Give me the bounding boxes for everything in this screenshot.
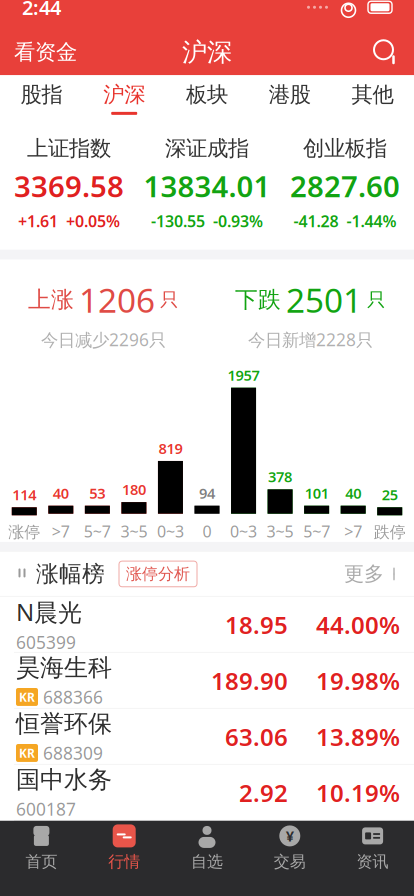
staticText: 5~7 [84,521,111,542]
staticText: 189.90 [211,665,288,697]
staticText: 1206 [79,278,155,322]
button[interactable]: 创业板指 [276,127,414,240]
staticText: 605399 [16,631,76,654]
staticText: 其他 [352,82,394,108]
staticText: 3~5 [267,521,294,542]
staticText: 1957 [227,365,259,385]
button[interactable]: 行情 [83,823,166,873]
staticText: 688366 [43,685,103,708]
staticText: 819 [158,438,182,458]
staticText: 18.95 [225,609,288,641]
staticText: >7 [344,521,362,542]
button[interactable]: 资讯 [331,823,414,873]
staticText: +0.05% [66,210,120,232]
staticText: 10.19% [316,777,400,809]
staticText: 涨停 [8,522,40,542]
button[interactable]: 板块 [166,75,248,121]
staticText: 上涨 [28,286,74,314]
staticText: -130.55 [151,210,205,232]
staticText: 13834.01 [143,166,270,205]
staticText: 5~7 [303,521,330,542]
button[interactable]: 昊海生科 [0,653,414,709]
staticText: 180 [122,480,146,499]
button[interactable]: 更多 [344,562,414,586]
button[interactable]: 涨停分析 [119,561,197,587]
staticText: 688309 [43,741,103,764]
staticText: 国中水务 [16,765,112,794]
button[interactable]: 其他 [331,75,414,121]
staticText: >7 [52,521,70,542]
staticText: N晨光 [16,596,82,628]
staticText: 昊海生科 [16,653,112,682]
staticText: 自选 [191,852,223,872]
staticText: 40 [53,483,69,503]
button[interactable]: 上证指数 [0,127,138,240]
staticText: 600187 [16,797,76,820]
button[interactable]: 港股 [248,75,331,121]
staticText: 3369.58 [14,166,124,205]
staticText: 行情 [108,852,140,872]
staticText: 只 [367,288,386,311]
staticText: 资讯 [357,852,389,872]
staticText: 44.00% [316,609,400,641]
staticText: 今日新增2228只 [248,328,373,351]
staticText: 深证成指 [165,135,249,161]
staticText: 94 [199,483,215,503]
staticText: ¥ [286,826,294,846]
button[interactable]: 恒誉环保 [0,709,414,765]
button[interactable]: N晨光 [0,597,414,653]
staticText: KR [19,745,35,761]
button[interactable]: 股指 [0,75,83,121]
staticText: 恒誉环保 [16,709,112,738]
staticText: 只 [160,288,179,311]
staticText: 25 [382,485,398,504]
staticText: 创业板指 [303,135,387,161]
staticText: 13.89% [316,721,400,753]
staticText: 交易 [274,852,306,872]
button[interactable]: 看资金 [0,29,91,75]
staticText: 19.98% [316,665,400,697]
staticText: 2.92 [239,777,288,809]
button[interactable]: 沪深 [83,75,166,121]
staticText: 沪深 [103,82,145,108]
staticText: +1.61 [18,210,58,232]
staticText: 2827.60 [290,166,400,205]
staticText: 港股 [269,82,311,108]
button[interactable]: 自选 [166,823,248,873]
staticText: 股指 [20,82,62,108]
staticText: 3~5 [120,521,147,542]
staticText: 首页 [25,852,57,872]
staticText: 63.06 [225,721,288,753]
button[interactable]: 深证成指 [138,127,276,240]
button[interactable]: 国中水务 [0,765,414,821]
staticText: KR [19,689,35,705]
staticText: 今日减少2296只 [41,328,166,351]
staticText: 53 [89,483,105,503]
staticText: 上证指数 [27,135,111,161]
staticText: 101 [305,483,329,503]
staticText: 更多 [344,562,384,586]
staticText: 下跌 [235,286,281,314]
staticText: -41.28 [293,210,338,232]
staticText: 跌停 [374,522,406,542]
staticText: -1.44% [346,210,396,232]
staticText: -0.93% [213,210,263,232]
button[interactable]: 首页 [0,823,83,873]
staticText: 114 [12,485,36,504]
button[interactable]: 涨幅榜 [0,560,105,588]
staticText: 沪深 [182,37,232,68]
staticText: 40 [345,483,361,503]
button[interactable]: ¥ [248,823,331,873]
staticText: 看资金 [14,39,77,65]
staticText: 0~3 [230,521,257,542]
staticText: 2:44 [22,0,61,21]
staticText: 378 [268,467,292,486]
staticText: 0~3 [157,521,184,542]
button[interactable]: 搜索 [358,29,414,75]
staticText: 涨幅榜 [36,560,105,588]
staticText: 涨停分析 [126,564,190,584]
staticText: 2501 [286,278,362,322]
staticText: 板块 [186,82,228,108]
staticText: 0 [202,521,211,542]
